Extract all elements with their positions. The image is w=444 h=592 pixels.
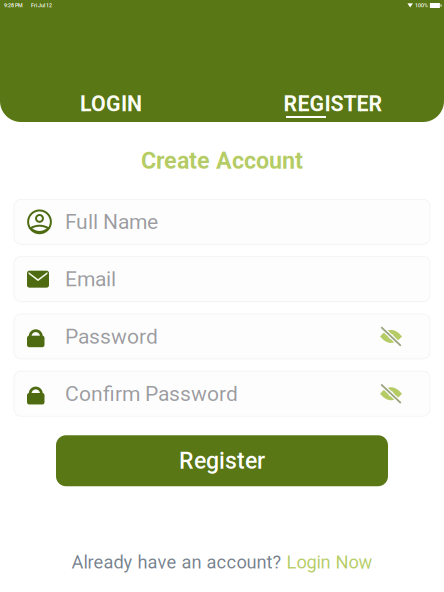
staticText: Confirm Password [65, 381, 238, 406]
button[interactable]: Login Now [286, 552, 372, 573]
staticText: Register [179, 447, 265, 474]
staticText: 9:28 PM [4, 2, 23, 9]
staticText: REGISTER [283, 91, 382, 116]
staticText: 100% [415, 2, 428, 9]
button[interactable]: Show password [371, 316, 411, 356]
staticText: Create Account [141, 147, 303, 174]
staticText: Login Now [286, 552, 372, 573]
button[interactable]: LOGIN [0, 90, 222, 118]
staticText: Password [65, 324, 158, 349]
staticText: Full Name [65, 209, 158, 234]
staticText: Fri Jul 12 [31, 2, 52, 9]
button[interactable]: Show password [371, 374, 411, 414]
staticText: Email [65, 267, 116, 291]
staticText: LOGIN [80, 91, 142, 116]
button[interactable]: REGISTER [222, 90, 444, 118]
staticText: Already have an account? [71, 552, 286, 573]
button[interactable]: Register [56, 435, 388, 486]
